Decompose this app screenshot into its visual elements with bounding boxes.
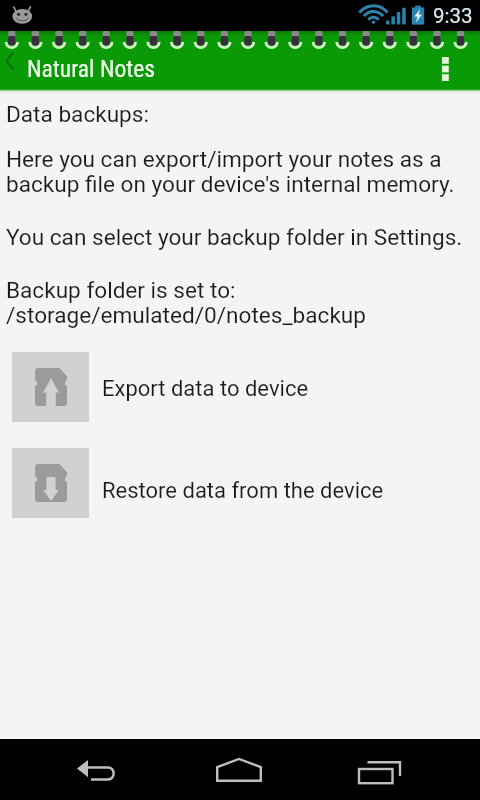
staticText: Natural Notes: [27, 55, 155, 83]
staticText: Backup folder is set to: /storage/emulat…: [6, 277, 367, 328]
button[interactable]: More options: [428, 46, 462, 92]
button[interactable]: Navigate up: [0, 48, 22, 78]
button[interactable]: Recent apps: [340, 741, 422, 798]
button[interactable]: [0, 448, 480, 518]
staticText: Restore data from the device: [102, 478, 384, 504]
staticText: Export data to device: [102, 376, 309, 402]
button[interactable]: Back: [58, 741, 140, 798]
button[interactable]: Home: [199, 741, 281, 798]
staticText: 9:33: [433, 4, 473, 28]
staticText: Here you can export/import your notes as…: [6, 146, 455, 197]
staticText: You can select your backup folder in Set…: [6, 224, 463, 250]
button[interactable]: [0, 352, 480, 422]
staticText: Data backups:: [6, 101, 149, 127]
